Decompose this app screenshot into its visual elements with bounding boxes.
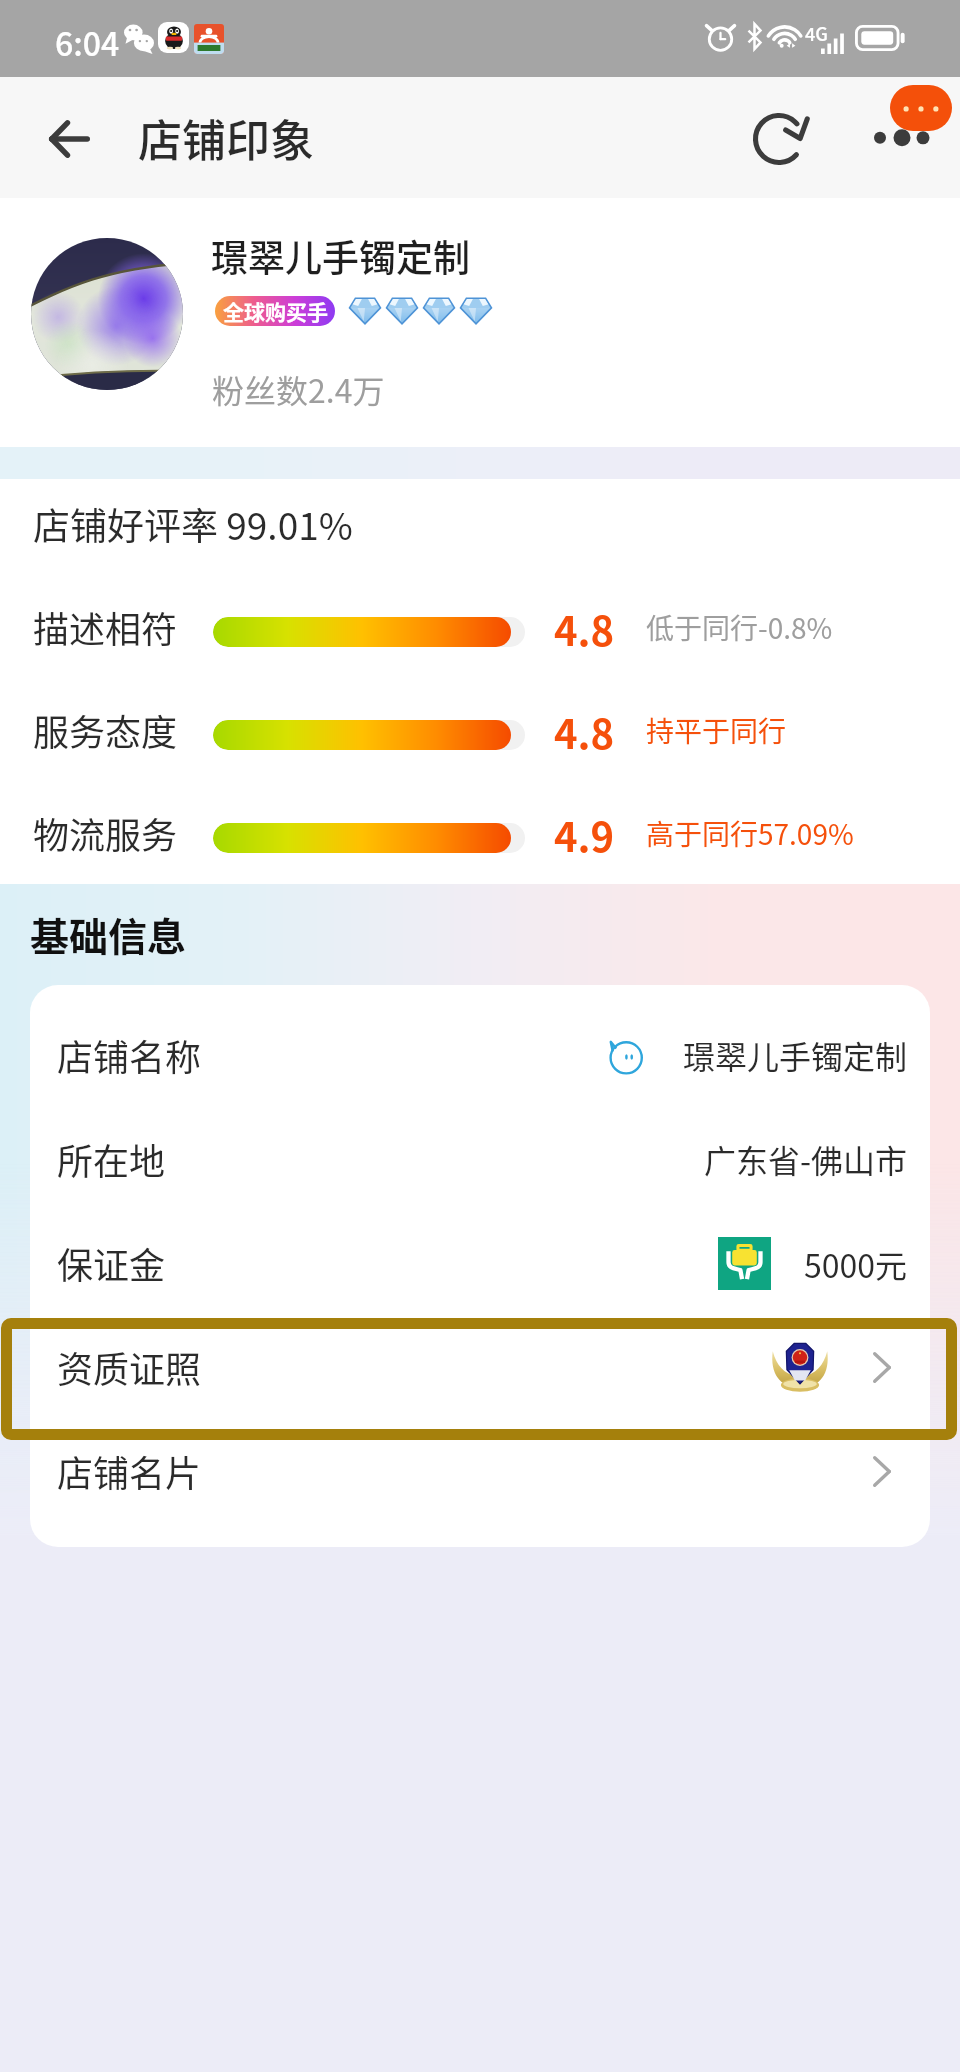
staticText: 高于同行57.09% bbox=[646, 813, 854, 854]
staticText: 店铺名片 bbox=[57, 1445, 202, 1497]
staticText: 持平于同行 bbox=[646, 710, 787, 751]
staticText: 粉丝数2.4万 bbox=[212, 366, 385, 412]
staticText: 5000元 bbox=[804, 1241, 908, 1287]
staticText: 广东省-佛山市 bbox=[704, 1136, 908, 1182]
staticText: 描述相符 bbox=[33, 601, 178, 653]
button[interactable]: 保证金 bbox=[30, 1211, 930, 1315]
staticText: 基础信息 bbox=[30, 906, 187, 962]
button[interactable]: 店铺名称 bbox=[30, 1003, 930, 1107]
button[interactable]: Refresh bbox=[739, 97, 823, 181]
staticText: 4G bbox=[805, 20, 828, 46]
button[interactable]: Back bbox=[28, 98, 110, 180]
button[interactable]: 所在地 bbox=[30, 1107, 930, 1211]
staticText: 低于同行-0.8% bbox=[646, 607, 833, 648]
staticText: 4.8 bbox=[554, 600, 615, 654]
staticText: 店铺印象 bbox=[138, 106, 314, 170]
staticText: 资质证照 bbox=[57, 1341, 202, 1393]
button[interactable]: 资质证照 bbox=[30, 1315, 930, 1419]
staticText: 所在地 bbox=[57, 1133, 166, 1185]
staticText: 全球购买手 bbox=[223, 296, 328, 326]
staticText: 6:04 bbox=[55, 19, 120, 65]
staticText: 物流服务 bbox=[33, 807, 178, 859]
staticText: 店铺名称 bbox=[57, 1029, 202, 1081]
button[interactable]: More options bbox=[858, 117, 918, 157]
button[interactable]: Chat bbox=[890, 85, 952, 131]
staticText: 店铺好评率 99.01% bbox=[33, 497, 353, 551]
staticText: 璟翠儿手镯定制 bbox=[211, 229, 470, 283]
staticText: 保证金 bbox=[57, 1237, 166, 1289]
staticText: 璟翠儿手镯定制 bbox=[683, 1032, 908, 1078]
staticText: 4.8 bbox=[554, 703, 615, 757]
staticText: 服务态度 bbox=[33, 704, 178, 756]
button[interactable]: 店铺名片 bbox=[30, 1419, 930, 1523]
staticText: 4.9 bbox=[554, 806, 615, 860]
